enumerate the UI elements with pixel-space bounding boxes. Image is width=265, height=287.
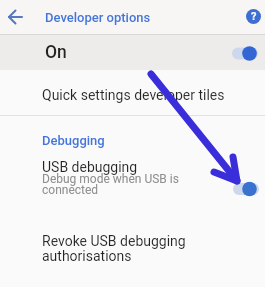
- button[interactable]: [0, 152, 265, 204]
- staticText: USB debugging: [42, 159, 138, 175]
- staticText: Developer options: [45, 10, 151, 25]
- staticText: Debugging: [42, 133, 105, 148]
- staticText: authorisations: [42, 248, 132, 264]
- staticText: connected: [42, 183, 99, 197]
- button[interactable]: [0, 70, 265, 115]
- staticText: Quick settings developer tiles: [42, 87, 225, 103]
- button[interactable]: [0, 0, 40, 34]
- staticText: On: [45, 42, 67, 63]
- staticText: Revoke USB debugging: [42, 233, 186, 249]
- staticText: Debug mode when USB is: [42, 172, 179, 186]
- button[interactable]: [240, 2, 265, 32]
- staticText: ?: [251, 10, 257, 23]
- button[interactable]: [0, 35, 265, 70]
- button[interactable]: [0, 228, 265, 273]
